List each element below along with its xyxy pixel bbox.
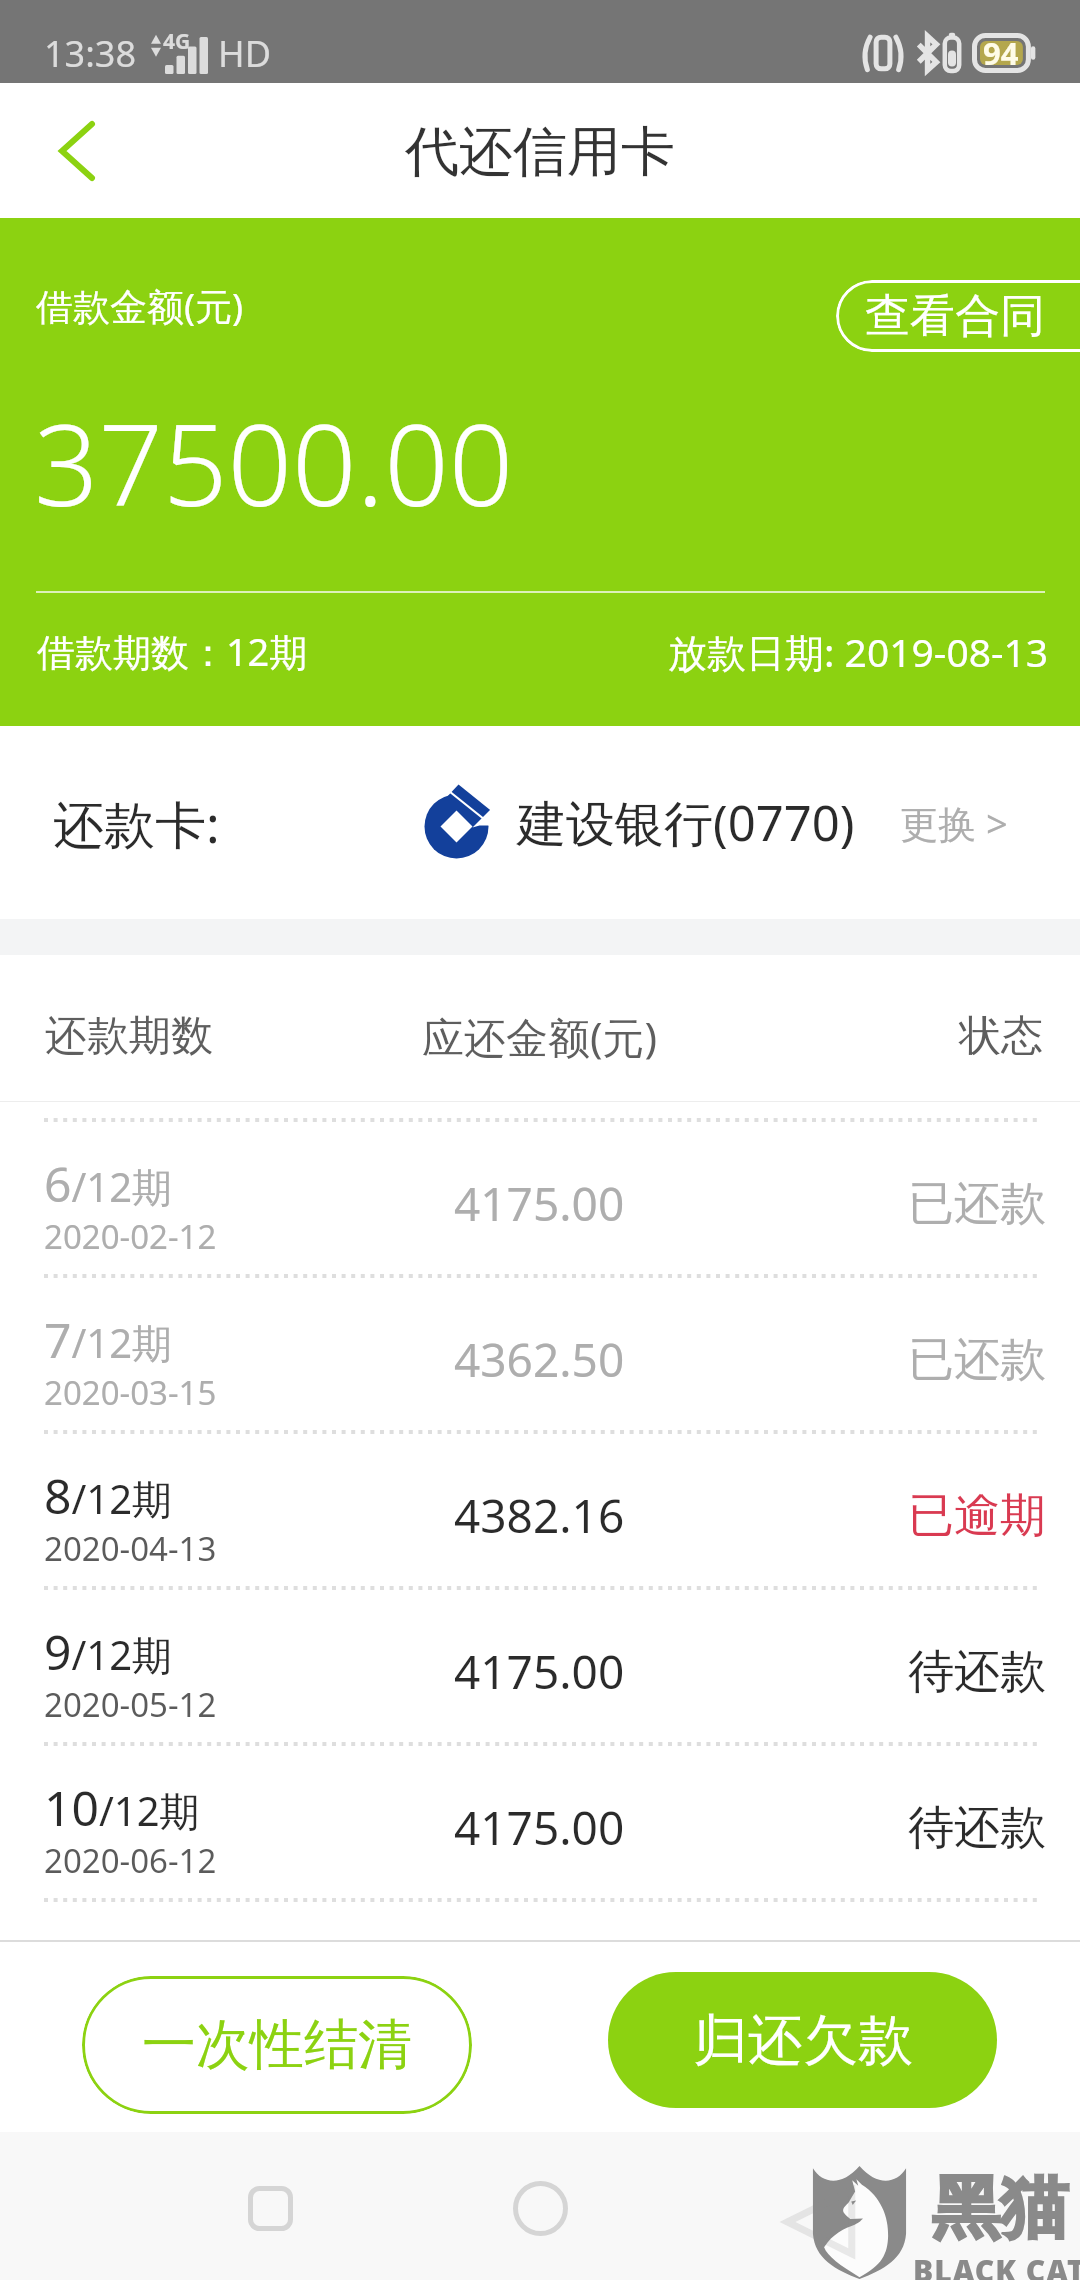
button[interactable]: 归还欠款	[608, 1972, 997, 2108]
staticText: HD	[218, 29, 271, 78]
button[interactable]: 8/12期	[0, 1441, 1080, 1579]
staticText: 应还金额(元)	[422, 1008, 658, 1065]
button[interactable]: 10/12期	[0, 1753, 1080, 1891]
staticText: 4175.00	[454, 1796, 625, 1859]
staticText: 黑猫	[932, 2166, 1068, 2252]
staticText: 一次性结清	[142, 2011, 412, 2079]
button[interactable]: 查看合同	[836, 280, 1080, 352]
button[interactable]: 9/12期	[0, 1597, 1080, 1735]
staticText: 2020-03-15	[44, 1370, 217, 1415]
staticText: 4175.00	[454, 1640, 625, 1703]
staticText: BLACK CAT	[913, 2250, 1080, 2280]
staticText: 待还款	[908, 1799, 1046, 1857]
staticText: 还款期数	[45, 1010, 213, 1063]
staticText: 13:38	[44, 29, 137, 78]
button[interactable]: 7/12期	[0, 1285, 1080, 1423]
button[interactable]: Back	[18, 83, 136, 218]
staticText: 4175.00	[454, 1172, 625, 1235]
staticText: 94	[983, 32, 1019, 72]
staticText: 2020-05-12	[44, 1682, 217, 1727]
staticText: 待还款	[908, 1643, 1046, 1701]
staticText: 4362.50	[454, 1328, 625, 1391]
staticText: 已还款	[908, 1175, 1046, 1233]
staticText: 状态	[959, 1010, 1043, 1063]
staticText: 建设银行(0770)	[517, 789, 855, 856]
button[interactable]: 还款卡:	[0, 726, 1080, 919]
staticText: 放款日期: 2019-08-13	[668, 625, 1049, 678]
staticText: 更换 >	[900, 797, 1008, 849]
button[interactable]: 一次性结清	[82, 1976, 472, 2114]
button[interactable]: 6/12期	[0, 1129, 1080, 1267]
staticText: 借款期数： 12期	[37, 625, 308, 677]
staticText: 还款卡:	[53, 788, 220, 858]
button[interactable]: Home	[494, 2162, 586, 2254]
staticText: 代还信用卡	[405, 118, 675, 186]
staticText: 8/12期	[44, 1463, 173, 1528]
staticText: 查看合同	[865, 288, 1045, 345]
staticText: 归还欠款	[693, 2006, 913, 2075]
staticText: 已还款	[908, 1331, 1046, 1389]
staticText: 37500.00	[34, 385, 514, 539]
staticText: 2020-02-12	[44, 1214, 217, 1259]
staticText: 7/12期	[44, 1307, 173, 1372]
staticText: 借款金额(元)	[36, 280, 244, 331]
staticText: 已逾期	[908, 1487, 1046, 1545]
staticText: 2020-06-12	[44, 1838, 217, 1883]
staticText: 4G	[163, 27, 191, 56]
staticText: 4382.16	[454, 1484, 625, 1547]
staticText: 2020-04-13	[44, 1526, 217, 1571]
button[interactable]: Recents	[228, 2166, 312, 2250]
staticText: 6/12期	[44, 1151, 173, 1216]
staticText: 10/12期	[44, 1775, 200, 1840]
staticText: 9/12期	[44, 1619, 173, 1684]
